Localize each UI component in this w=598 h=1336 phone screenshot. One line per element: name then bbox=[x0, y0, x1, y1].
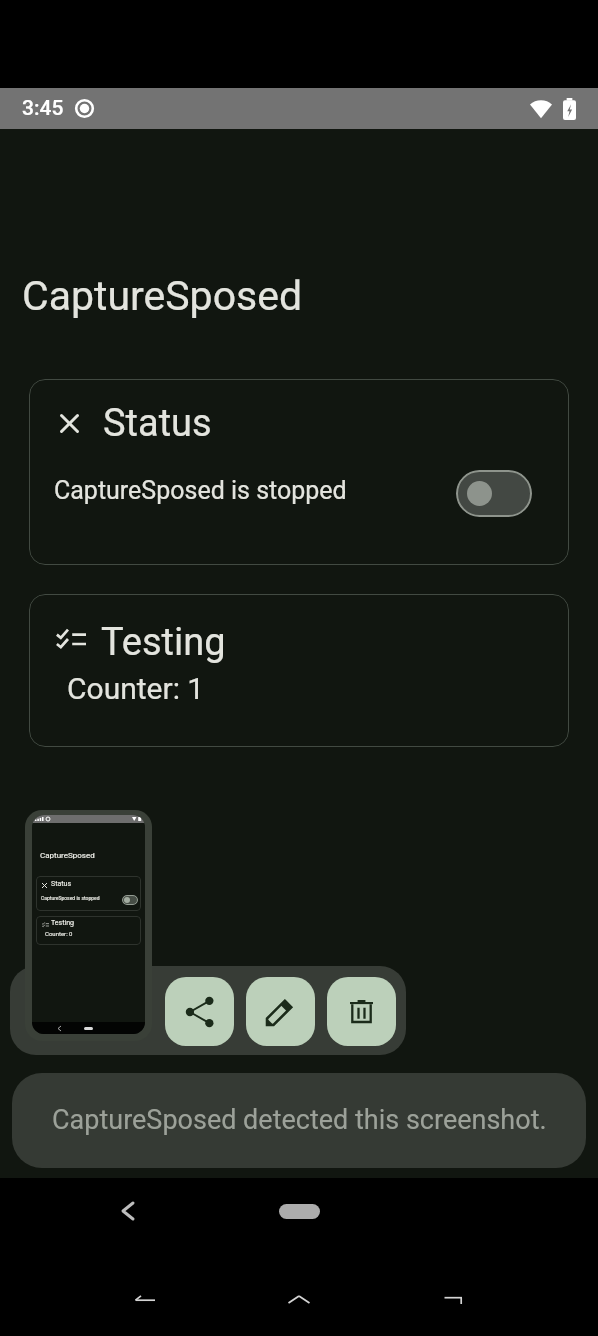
button[interactable]: Delete bbox=[327, 977, 396, 1046]
staticText: 3:45 bbox=[22, 96, 64, 121]
button[interactable]: Status bbox=[29, 379, 569, 565]
staticText: Counter: 1 bbox=[67, 671, 205, 706]
button[interactable]: Home bbox=[265, 1193, 333, 1229]
staticText: CaptureSposed is stopped bbox=[54, 476, 347, 505]
staticText: Status bbox=[103, 401, 212, 446]
button[interactable]: Home bbox=[275, 1286, 323, 1312]
button[interactable]: Recent apps bbox=[429, 1286, 477, 1312]
button[interactable]: Back bbox=[104, 1187, 152, 1235]
staticText: CaptureSposed bbox=[22, 272, 303, 320]
staticText: Status bbox=[51, 880, 72, 888]
button[interactable]: Edit bbox=[246, 977, 315, 1046]
staticText: CaptureSposed detected this screenshot. bbox=[52, 1104, 547, 1136]
button[interactable]: Back bbox=[121, 1286, 169, 1312]
staticText: CaptureSposed is stopped bbox=[41, 895, 100, 901]
button[interactable]: Screenshot preview bbox=[25, 810, 152, 1041]
staticText: Testing bbox=[101, 620, 226, 665]
button[interactable]: Share bbox=[165, 977, 234, 1046]
staticText: Counter: 0 bbox=[45, 930, 73, 937]
button[interactable]: Testing bbox=[29, 594, 569, 747]
staticText: CaptureSposed bbox=[40, 851, 95, 860]
staticText: Testing bbox=[51, 919, 74, 927]
button[interactable]: Toggle service bbox=[456, 470, 532, 517]
